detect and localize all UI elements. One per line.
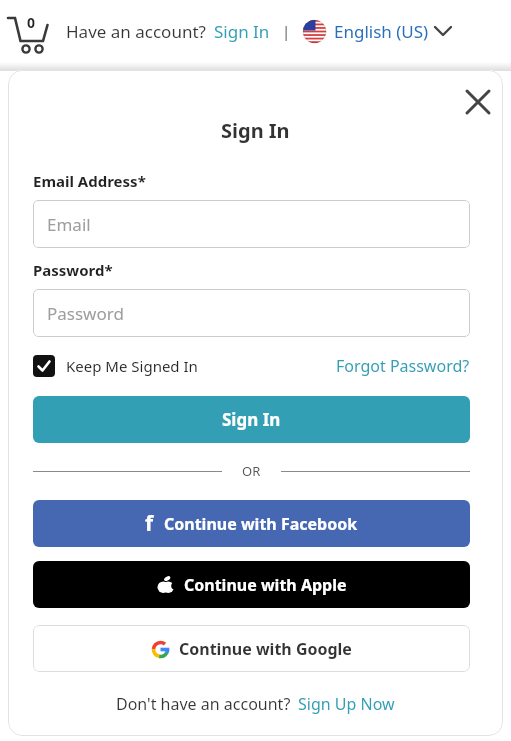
staticText: Continue with Google — [179, 638, 352, 660]
staticText: Password — [47, 302, 124, 325]
staticText: Password* — [33, 260, 113, 280]
staticText: Email — [47, 213, 91, 236]
staticText: English (US) — [334, 20, 429, 43]
staticText: Sign In — [221, 117, 290, 144]
staticText: f — [145, 509, 154, 538]
staticText: Sign In — [214, 20, 270, 43]
staticText: Don't have an account? — [116, 693, 291, 715]
staticText: Continue with Apple — [184, 574, 347, 596]
staticText: 0 — [27, 13, 36, 32]
staticText: OR — [242, 462, 261, 480]
staticText: Sign In — [222, 408, 281, 431]
staticText: Keep Me Signed In — [66, 356, 198, 376]
staticText: Email Address* — [33, 171, 146, 191]
staticText: Have an account? — [66, 20, 206, 43]
staticText: Continue with Facebook — [164, 513, 358, 535]
staticText: Sign Up Now — [298, 693, 395, 715]
staticText: | — [282, 21, 291, 41]
staticText: Forgot Password? — [336, 355, 470, 377]
